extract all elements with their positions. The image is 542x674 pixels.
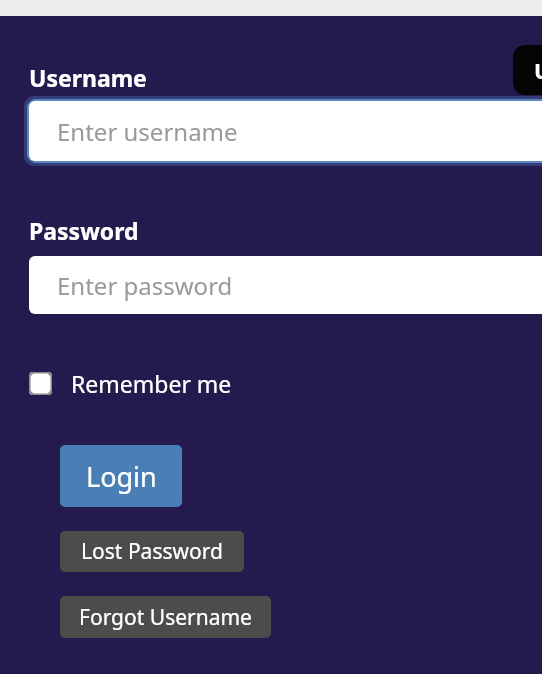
staticText: Login <box>86 458 157 495</box>
staticText: Password <box>29 215 139 246</box>
staticText: Enter password <box>57 269 233 302</box>
button[interactable]: Enter username <box>29 101 542 161</box>
button[interactable]: Enter password <box>29 256 542 314</box>
button[interactable]: Forgot Username <box>60 596 271 638</box>
staticText: Lost Password <box>81 537 223 566</box>
button[interactable]: User badge <box>513 45 542 95</box>
staticText: Us <box>534 55 542 85</box>
button[interactable]: Remember me <box>29 368 232 399</box>
staticText: Remember me <box>71 368 232 399</box>
button[interactable]: Lost Password <box>60 531 244 572</box>
staticText: Enter username <box>57 115 238 148</box>
button[interactable]: Login <box>60 445 182 507</box>
staticText: Username <box>29 62 147 93</box>
staticText: Forgot Username <box>79 603 252 632</box>
